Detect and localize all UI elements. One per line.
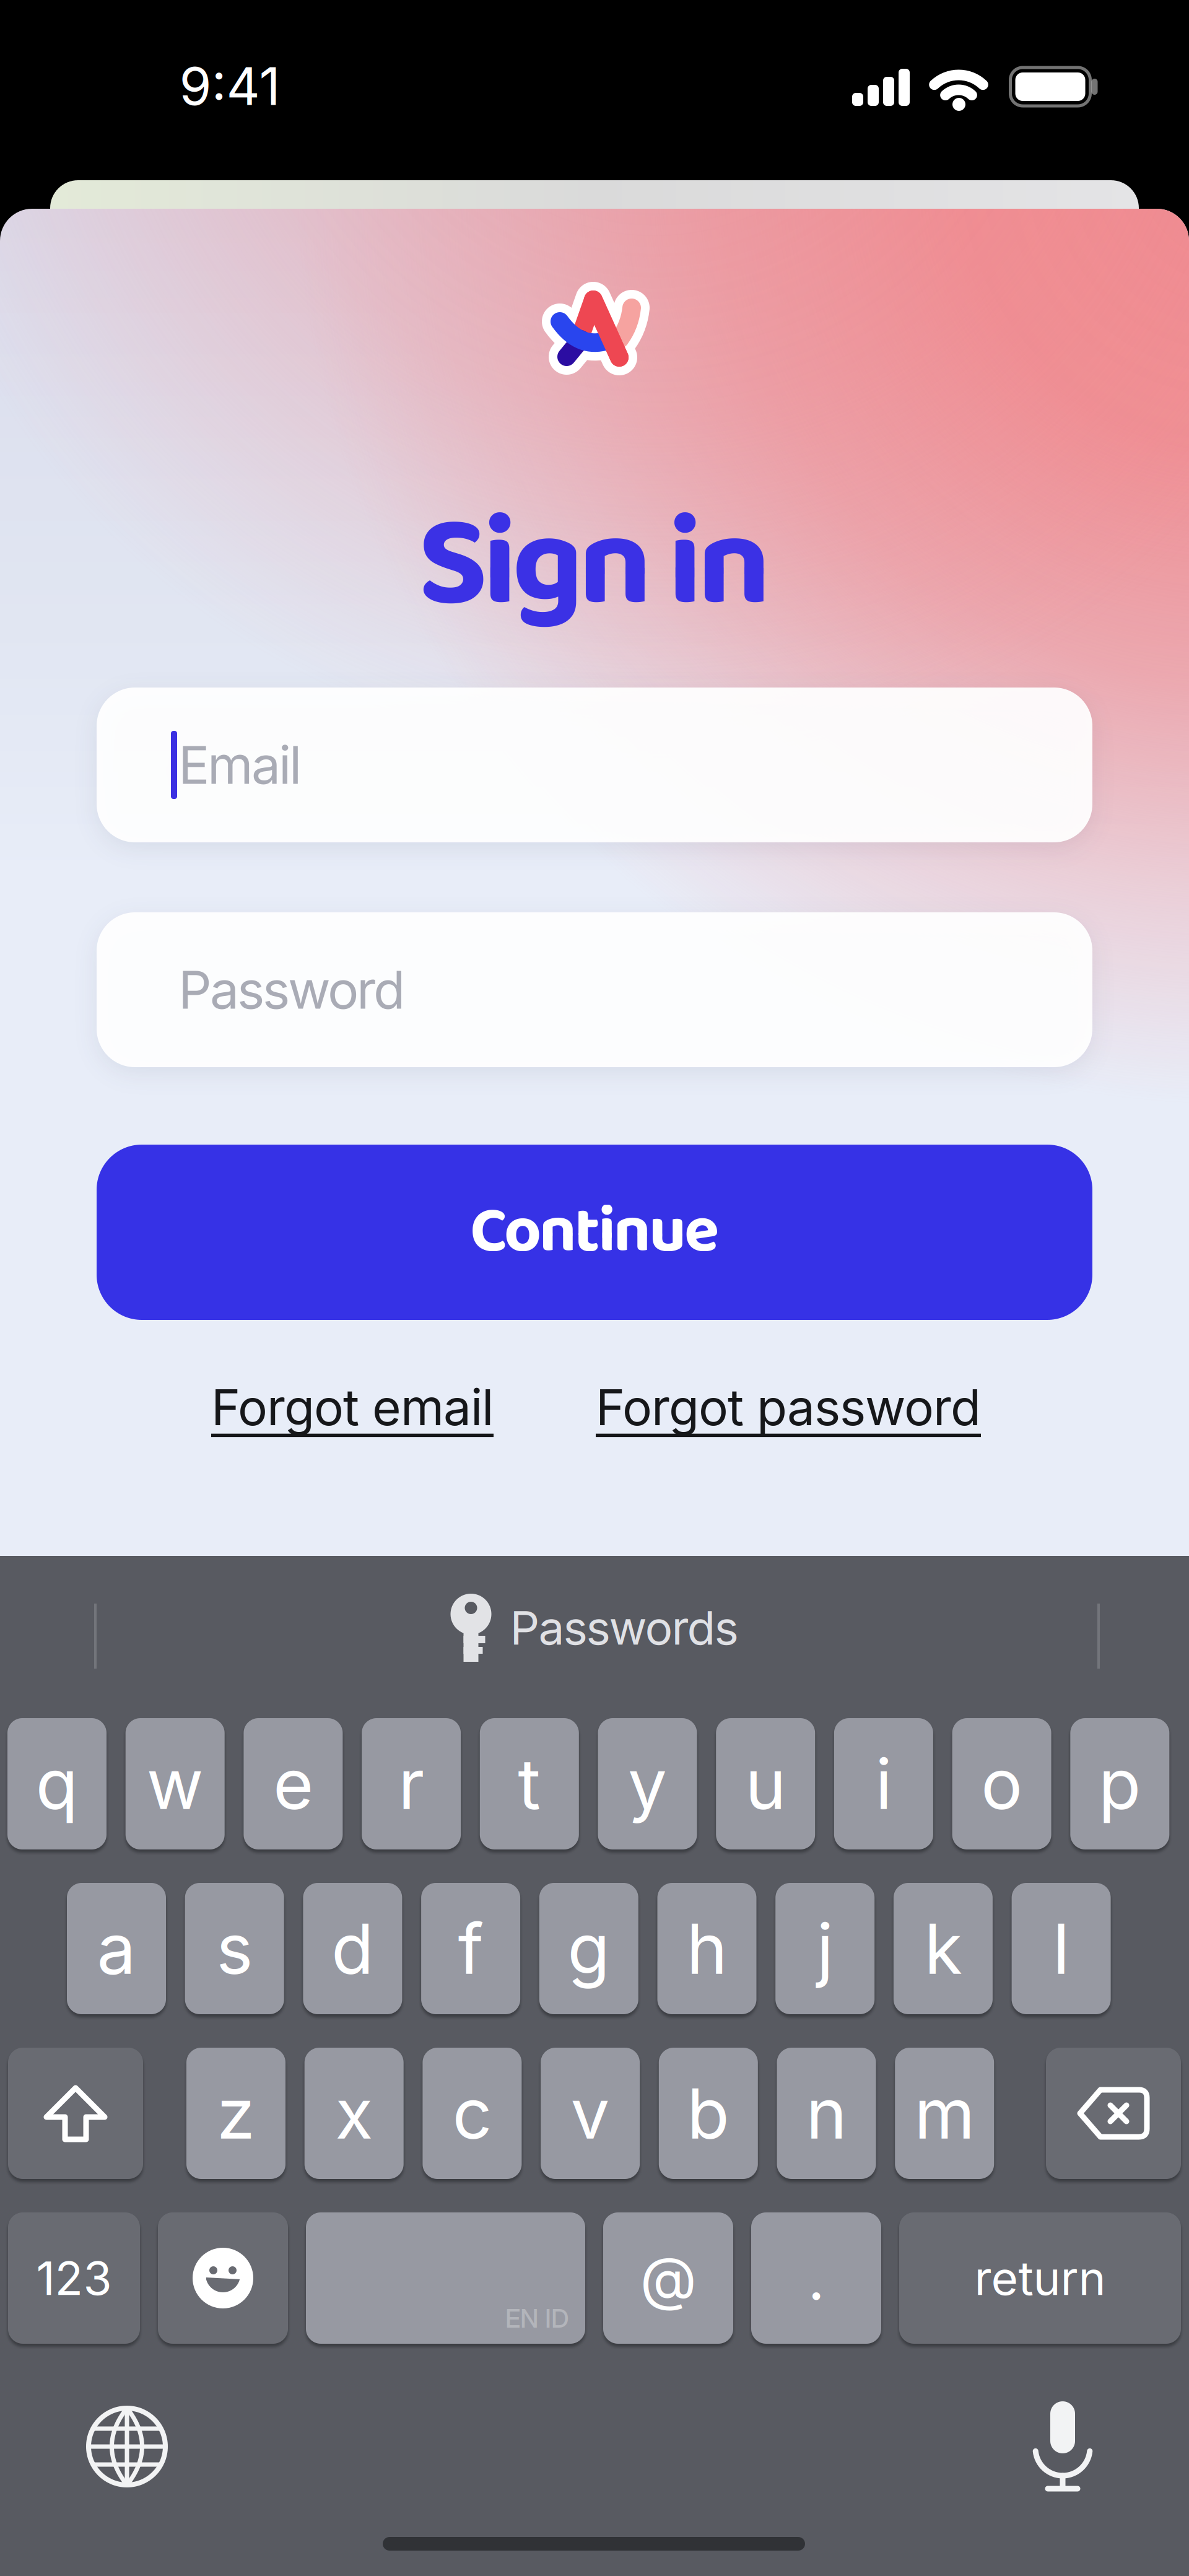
button[interactable]: l: [1012, 1883, 1111, 2014]
button[interactable]: space: [306, 2212, 585, 2344]
staticText: Email: [178, 733, 302, 796]
staticText: Passwords: [510, 1600, 738, 1656]
staticText: 123: [36, 2250, 112, 2306]
staticText: Continue: [470, 1181, 719, 1284]
button[interactable]: Password: [97, 912, 1092, 1067]
button[interactable]: Emoji: [158, 2212, 288, 2344]
staticText: v: [571, 2071, 610, 2155]
button[interactable]: Forgot password: [541, 1373, 1036, 1441]
button[interactable]: w: [126, 1718, 225, 1849]
staticText: EN ID: [505, 2303, 569, 2334]
staticText: d: [331, 1907, 374, 1991]
staticText: Password: [178, 958, 405, 1021]
button[interactable]: q: [7, 1718, 107, 1849]
button[interactable]: return: [899, 2212, 1181, 2344]
button[interactable]: o: [952, 1718, 1051, 1849]
button[interactable]: r: [362, 1718, 461, 1849]
button[interactable]: g: [539, 1883, 638, 2014]
staticText: k: [924, 1907, 962, 1991]
staticText: Forgot password: [596, 1377, 981, 1437]
button[interactable]: .: [751, 2212, 881, 2344]
button[interactable]: p: [1070, 1718, 1169, 1849]
button[interactable]: Passwords: [0, 1578, 1189, 1677]
button[interactable]: e: [244, 1718, 343, 1849]
staticText: l: [1053, 1907, 1070, 1991]
staticText: w: [147, 1742, 204, 1826]
staticText: x: [335, 2071, 373, 2155]
staticText: q: [36, 1742, 78, 1826]
staticText: i: [875, 1742, 892, 1826]
staticText: .: [808, 2243, 825, 2314]
button[interactable]: n: [777, 2048, 876, 2179]
staticText: j: [817, 1907, 833, 1991]
button[interactable]: b: [659, 2048, 758, 2179]
button[interactable]: a: [67, 1883, 166, 2014]
staticText: b: [687, 2071, 730, 2155]
staticText: m: [914, 2071, 975, 2155]
button[interactable]: m: [895, 2048, 994, 2179]
button[interactable]: t: [480, 1718, 579, 1849]
button[interactable]: s: [185, 1883, 284, 2014]
staticText: a: [97, 1907, 136, 1991]
button[interactable]: h: [657, 1883, 756, 2014]
staticText: Sign in: [418, 464, 771, 669]
staticText: n: [806, 2071, 847, 2155]
staticText: Forgot email: [211, 1377, 494, 1437]
staticText: c: [452, 2071, 492, 2155]
button[interactable]: z: [186, 2048, 285, 2179]
staticText: g: [567, 1907, 610, 1991]
button[interactable]: v: [541, 2048, 640, 2179]
staticText: t: [518, 1742, 541, 1826]
button[interactable]: Dictate: [1032, 2401, 1094, 2492]
button[interactable]: c: [423, 2048, 522, 2179]
staticText: y: [628, 1742, 667, 1826]
staticText: f: [458, 1907, 483, 1991]
staticText: s: [216, 1907, 253, 1991]
button[interactable]: Delete: [1046, 2048, 1181, 2179]
button[interactable]: x: [304, 2048, 404, 2179]
button[interactable]: j: [775, 1883, 875, 2014]
button[interactable]: Forgot email: [160, 1373, 544, 1441]
staticText: u: [745, 1742, 786, 1826]
staticText: p: [1098, 1742, 1141, 1826]
staticText: 9:41: [179, 55, 280, 118]
button[interactable]: u: [716, 1718, 815, 1849]
staticText: r: [398, 1742, 424, 1826]
staticText: o: [981, 1742, 1022, 1826]
button[interactable]: f: [421, 1883, 520, 2014]
button[interactable]: Shift: [8, 2048, 143, 2179]
button[interactable]: 123: [8, 2212, 140, 2344]
staticText: @: [640, 2243, 696, 2314]
button[interactable]: i: [834, 1718, 933, 1849]
button[interactable]: Next keyboard: [84, 2404, 170, 2489]
button[interactable]: Continue: [97, 1145, 1092, 1320]
staticText: z: [217, 2071, 255, 2155]
staticText: e: [273, 1742, 313, 1826]
button[interactable]: Email: [97, 688, 1092, 842]
staticText: return: [974, 2250, 1106, 2306]
staticText: h: [686, 1907, 727, 1991]
button[interactable]: d: [303, 1883, 402, 2014]
button[interactable]: y: [598, 1718, 697, 1849]
button[interactable]: @: [603, 2212, 733, 2344]
button[interactable]: k: [894, 1883, 993, 2014]
